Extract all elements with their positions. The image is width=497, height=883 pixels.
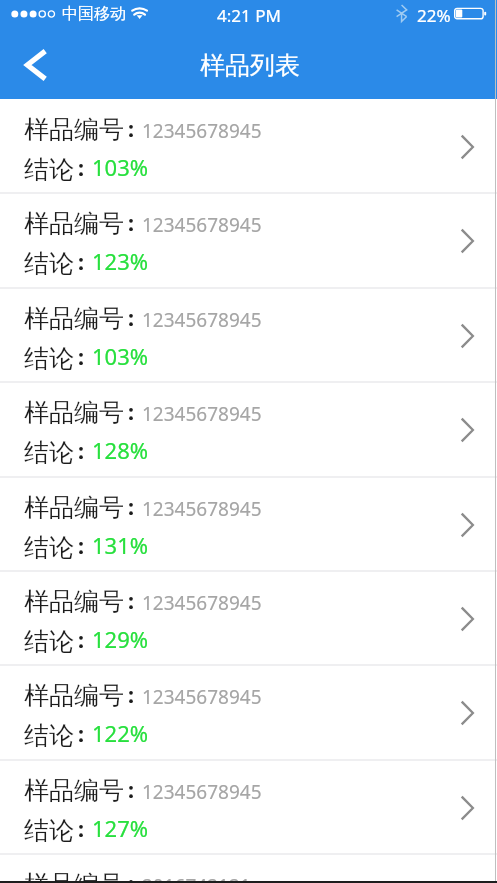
staticText: 22% xyxy=(417,4,451,27)
staticText: 12345678945 xyxy=(142,779,262,805)
staticText: 122% xyxy=(92,718,149,748)
staticText: 中国移动 xyxy=(62,4,126,24)
staticText: 128% xyxy=(92,435,149,465)
button[interactable]: 样品编号 xyxy=(0,761,497,855)
button[interactable]: 样品编号 xyxy=(0,855,497,883)
staticText: 样品编号 xyxy=(24,775,124,806)
button[interactable]: 样品编号 xyxy=(0,383,497,477)
staticText: 4:21 PM xyxy=(217,4,281,27)
staticText: 103% xyxy=(92,152,149,182)
staticText: 12345678945 xyxy=(142,401,262,427)
staticText: 12345678945 xyxy=(142,307,262,333)
button[interactable]: 样品编号 xyxy=(0,478,497,572)
button[interactable]: 样品编号 xyxy=(0,666,497,760)
staticText: 123% xyxy=(92,246,149,276)
staticText: 129% xyxy=(92,624,149,654)
staticText: 12345678945 xyxy=(142,684,262,710)
button[interactable]: 样品编号 xyxy=(0,194,497,288)
staticText: 样品列表 xyxy=(200,50,300,81)
staticText: 131% xyxy=(92,530,149,560)
staticText: 样品编号 xyxy=(24,397,124,428)
staticText: 结论 xyxy=(24,248,74,279)
other: Open sample detail xyxy=(455,510,485,540)
staticText: 样品编号 xyxy=(24,869,124,883)
button[interactable]: Back xyxy=(0,36,62,94)
staticText: 结论 xyxy=(24,815,74,846)
staticText: 结论 xyxy=(24,437,74,468)
staticText: 样品编号 xyxy=(24,492,124,523)
other: Open sample detail xyxy=(455,793,485,823)
staticText: 12345678945 xyxy=(142,496,262,522)
staticText: 12345678945 xyxy=(142,590,262,616)
staticText: 2016742121 xyxy=(142,873,251,883)
staticText: 结论 xyxy=(24,154,74,185)
other: Open sample detail xyxy=(455,321,485,351)
staticText: 样品编号 xyxy=(24,586,124,617)
other: Open sample detail xyxy=(455,415,485,445)
staticText: 结论 xyxy=(24,343,74,374)
button[interactable]: 样品编号 xyxy=(0,289,497,383)
staticText: 样品编号 xyxy=(24,303,124,334)
other: Open sample detail xyxy=(455,132,485,162)
staticText: 样品编号 xyxy=(24,208,124,239)
staticText: 12345678945 xyxy=(142,118,262,144)
other: Open sample detail xyxy=(455,604,485,634)
staticText: 结论 xyxy=(24,626,74,657)
staticText: 结论 xyxy=(24,532,74,563)
button[interactable]: 样品编号 xyxy=(0,100,497,194)
other: Open sample detail xyxy=(455,698,485,728)
staticText: 结论 xyxy=(24,720,74,751)
staticText: 样品编号 xyxy=(24,114,124,145)
staticText: 127% xyxy=(92,813,149,843)
staticText: 12345678945 xyxy=(142,212,262,238)
staticText: 样品编号 xyxy=(24,680,124,711)
other: Open sample detail xyxy=(455,226,485,256)
button[interactable]: 样品编号 xyxy=(0,572,497,666)
staticText: 103% xyxy=(92,341,149,371)
